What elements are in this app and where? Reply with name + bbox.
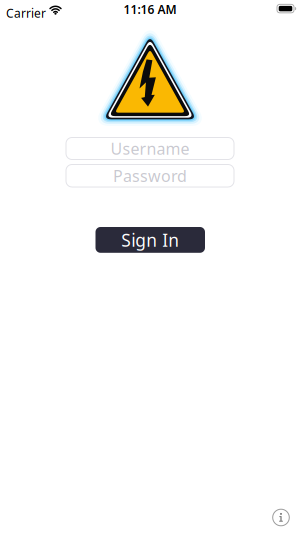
staticText: Password bbox=[113, 165, 187, 186]
staticText: Username bbox=[110, 138, 189, 159]
button[interactable]: Info bbox=[272, 508, 290, 526]
staticText: Sign In bbox=[121, 228, 179, 251]
button[interactable]: Username bbox=[66, 137, 234, 159]
staticText: 11:16 AM bbox=[123, 1, 176, 17]
button[interactable]: Password bbox=[66, 164, 234, 187]
staticText: Carrier bbox=[6, 5, 46, 21]
button[interactable]: Sign In bbox=[95, 227, 205, 253]
